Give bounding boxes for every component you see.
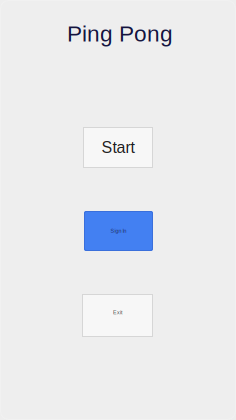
staticText: Sign In — [110, 228, 126, 234]
staticText: Start — [101, 139, 134, 156]
staticText: Ping Pong — [67, 21, 173, 46]
button[interactable]: Sign In — [84, 211, 153, 251]
button[interactable]: Exit — [82, 294, 153, 337]
button[interactable]: Start — [83, 127, 153, 168]
staticText: Exit — [113, 309, 122, 315]
